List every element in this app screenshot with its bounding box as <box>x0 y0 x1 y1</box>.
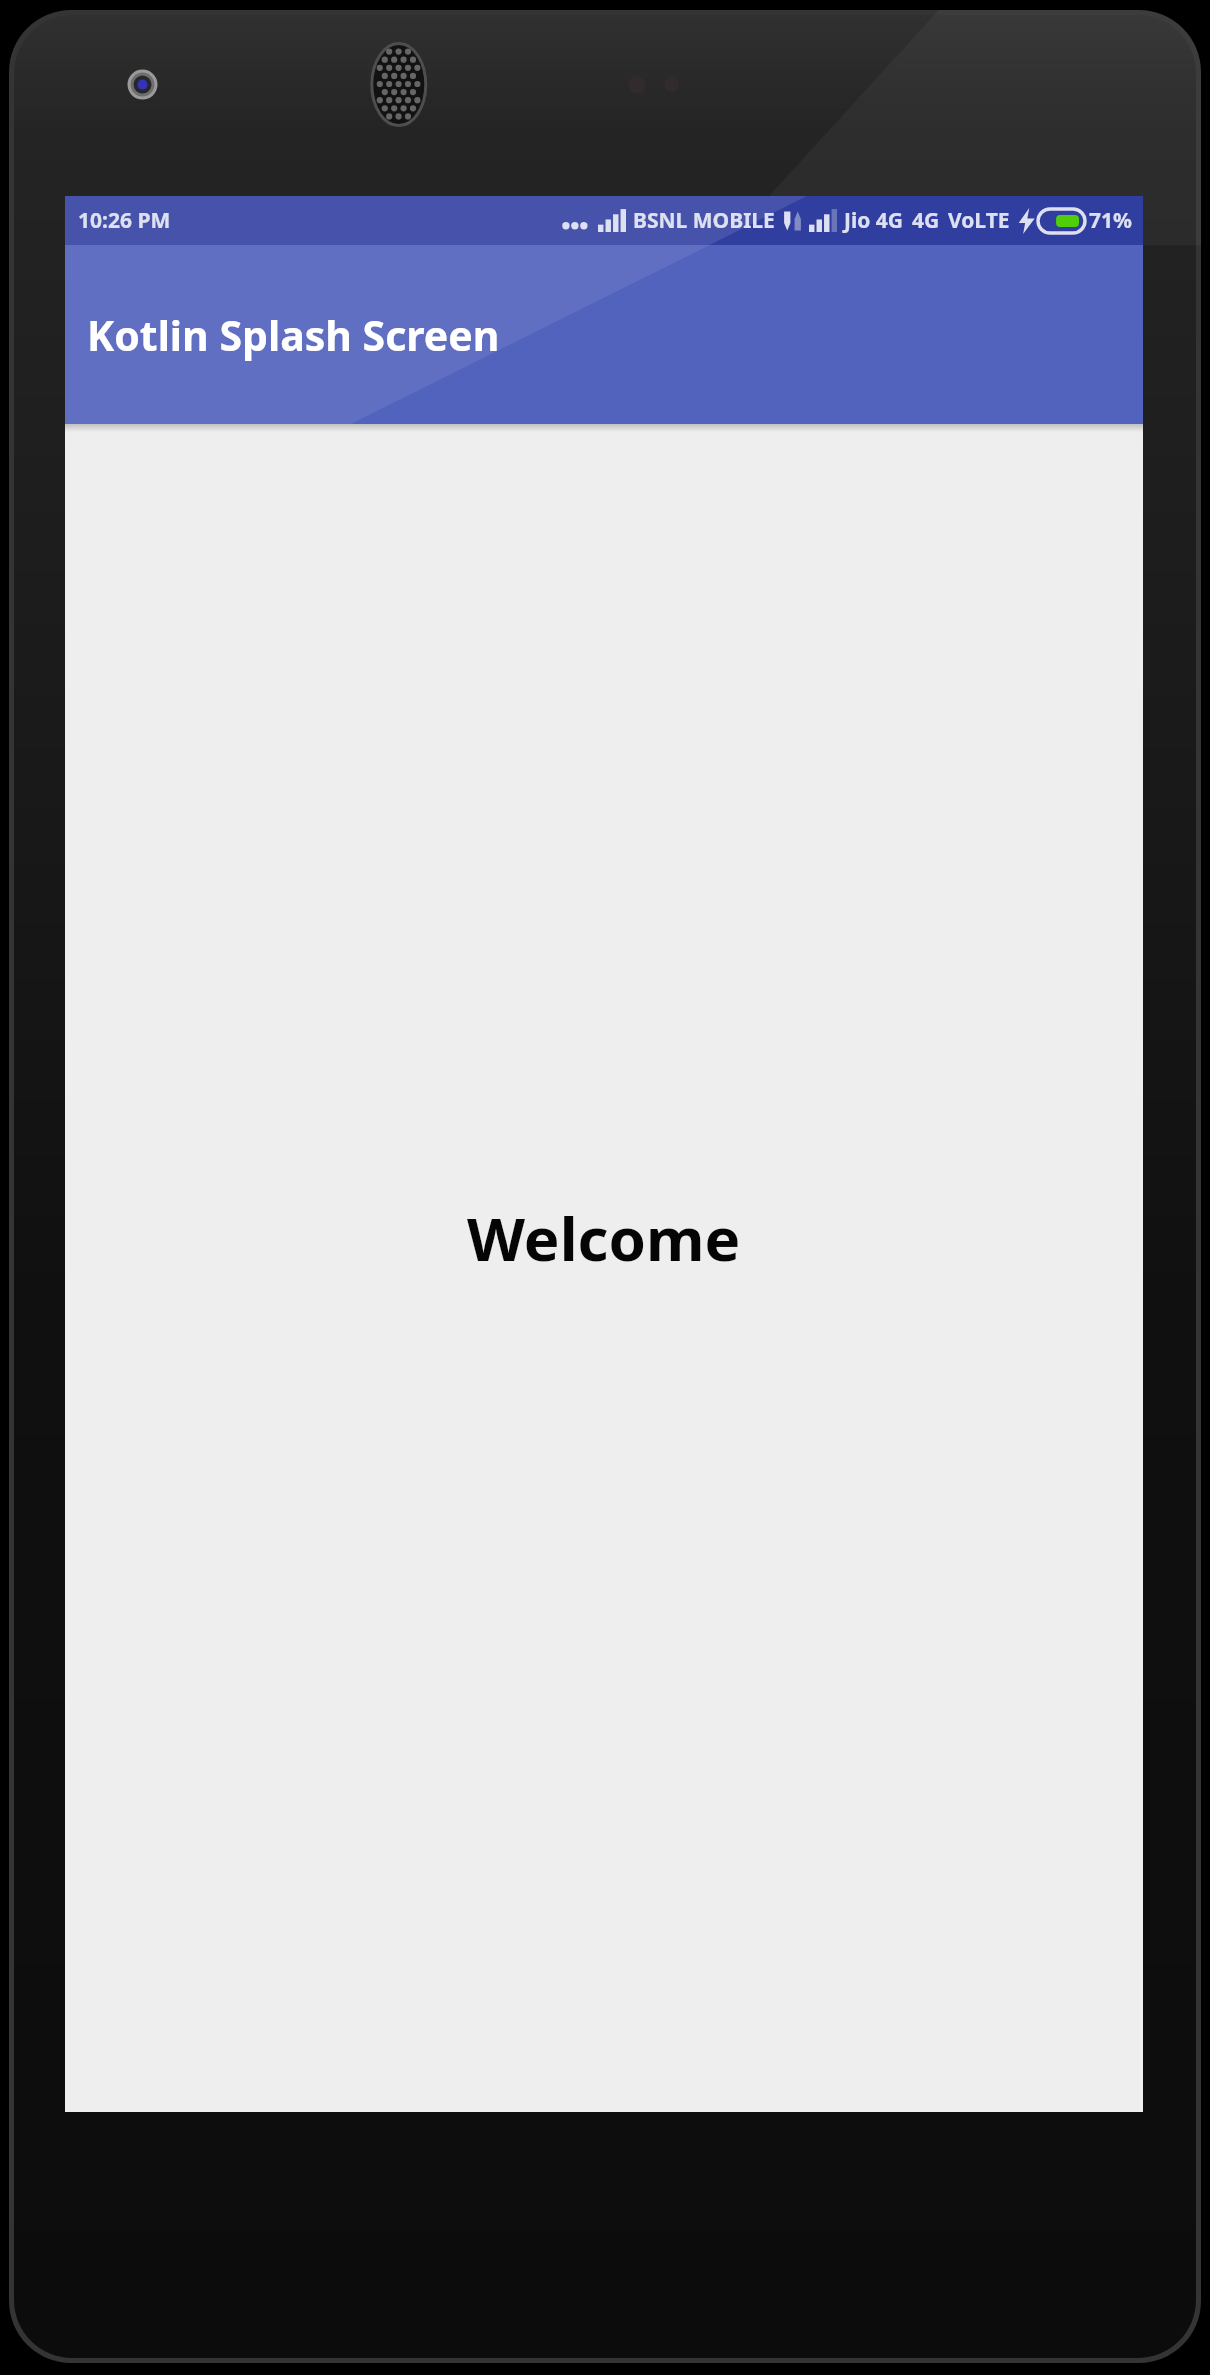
staticText: Kotlin Splash Screen <box>87 307 500 363</box>
staticText: 4G <box>912 206 940 235</box>
staticText: Welcome <box>467 1197 741 1279</box>
staticText: 71% <box>1089 206 1132 235</box>
staticText: BSNL MOBILE <box>633 206 775 235</box>
staticText: VoLTE <box>948 206 1010 235</box>
button[interactable]: Kotlin Splash Screen <box>65 245 1143 424</box>
staticText: 10:26 PM <box>78 206 171 235</box>
staticText: Jio 4G <box>844 206 904 235</box>
